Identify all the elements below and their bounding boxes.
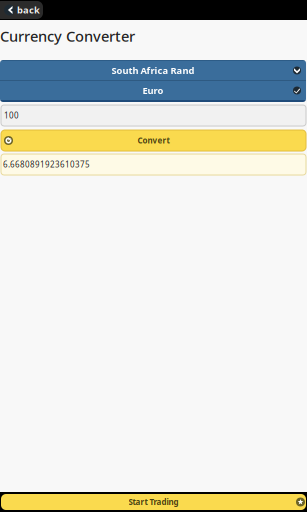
button[interactable]: Convert — [0, 130, 307, 151]
staticText: 100 — [4, 110, 19, 121]
staticText: Euro — [142, 84, 163, 97]
staticText: South Africa Rand — [111, 64, 194, 77]
staticText: back — [17, 4, 40, 16]
staticText: Convert — [137, 135, 169, 146]
button[interactable]: Start Trading — [0, 494, 307, 510]
button[interactable]: back — [0, 1, 43, 19]
button[interactable]: South Africa Rand — [0, 61, 306, 80]
button[interactable]: Euro — [0, 81, 306, 100]
staticText: 6.6680891923610375 — [3, 159, 90, 170]
staticText: Currency Converter — [0, 26, 135, 46]
staticText: Start Trading — [128, 497, 178, 507]
